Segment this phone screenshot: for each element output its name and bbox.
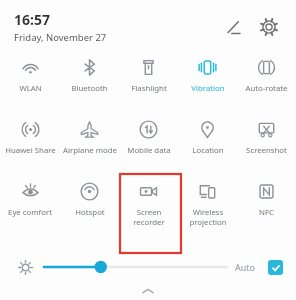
staticText: Eye comfort (8, 207, 52, 218)
staticText: 16:57 (14, 10, 50, 29)
staticText: Airplane mode (63, 145, 117, 156)
staticText: Wireless projection (189, 207, 227, 227)
staticText: Hotspot (75, 207, 105, 218)
button[interactable]: Screenshot (237, 110, 296, 156)
staticText: Flashlight (131, 83, 167, 94)
button[interactable]: Flashlight (119, 48, 178, 94)
staticText: Bluetooth (71, 83, 108, 94)
button[interactable]: Settings (254, 12, 284, 42)
button[interactable]: Huawei Share (0, 110, 60, 156)
staticText: Location (192, 145, 224, 156)
staticText: Mobile data (127, 145, 171, 156)
button[interactable]: Screen recorder (119, 172, 178, 227)
button[interactable]: Airplane mode (60, 110, 119, 156)
staticText: Auto (235, 261, 256, 273)
button[interactable]: Edit (218, 12, 248, 42)
staticText: NFC (259, 207, 274, 218)
button[interactable]: Vibration (178, 48, 237, 94)
button[interactable]: Bluetooth (60, 48, 119, 94)
button[interactable]: Brightness slider (44, 256, 227, 278)
button[interactable]: Auto-rotate (237, 48, 296, 94)
button[interactable]: Brightness (12, 254, 38, 280)
button[interactable]: Hotspot (60, 172, 119, 218)
staticText: Huawei Share (5, 145, 56, 156)
button[interactable]: Collapse (0, 282, 296, 300)
button[interactable]: Auto brightness (264, 256, 286, 278)
staticText: Vibration (191, 83, 225, 94)
staticText: Screenshot (246, 145, 287, 156)
staticText: Screen recorder (133, 207, 165, 227)
button[interactable]: Eye comfort (0, 172, 60, 218)
button[interactable]: Mobile data (119, 110, 178, 156)
button[interactable]: Wireless projection (178, 172, 237, 227)
staticText: Friday, November 27 (14, 31, 107, 44)
button[interactable]: WLAN (0, 48, 60, 94)
staticText: WLAN (19, 83, 42, 94)
button[interactable]: Location (178, 110, 237, 156)
button[interactable]: NFC (237, 172, 296, 218)
staticText: Auto-rotate (245, 83, 288, 94)
